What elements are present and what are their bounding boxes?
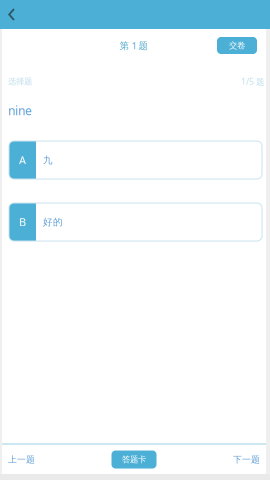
staticText: 1/5 题 (241, 76, 264, 87)
button[interactable]: 交卷 (217, 37, 257, 54)
staticText: 好的 (43, 216, 63, 228)
button[interactable]: Back (0, 0, 24, 29)
button[interactable]: 上一题 (8, 445, 35, 474)
button[interactable]: 答题卡 (111, 450, 156, 468)
staticText: B (19, 214, 26, 229)
button[interactable]: B (9, 203, 262, 241)
staticText: A (19, 152, 26, 167)
staticText: 下一题 (233, 454, 260, 465)
staticText: 答题卡 (122, 454, 146, 465)
staticText: 九 (43, 154, 53, 166)
staticText: 选择题 (8, 76, 32, 87)
button[interactable]: A (9, 141, 262, 179)
staticText: 上一题 (8, 454, 35, 465)
staticText: 交卷 (229, 40, 245, 51)
button[interactable]: 下一题 (233, 445, 260, 474)
staticText: 第 1 题 (119, 39, 148, 52)
staticText: nine (8, 102, 32, 119)
